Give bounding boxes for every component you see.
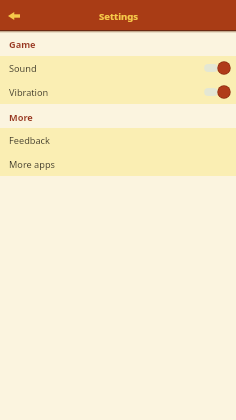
staticText: Feedback: [9, 134, 50, 147]
staticText: More apps: [9, 158, 55, 171]
button[interactable]: Toggle Vibration: [200, 80, 236, 104]
staticText: Game: [9, 38, 36, 51]
button[interactable]: Sound: [0, 56, 236, 80]
button[interactable]: Toggle Sound: [200, 56, 236, 80]
button[interactable]: Feedback: [0, 128, 236, 152]
button[interactable]: More apps: [0, 152, 236, 176]
button[interactable]: Vibration: [0, 80, 236, 104]
button[interactable]: Navigate up: [0, 0, 30, 30]
staticText: Vibration: [9, 86, 49, 99]
staticText: Settings: [99, 10, 138, 23]
staticText: Sound: [9, 62, 37, 75]
staticText: More: [9, 111, 33, 124]
